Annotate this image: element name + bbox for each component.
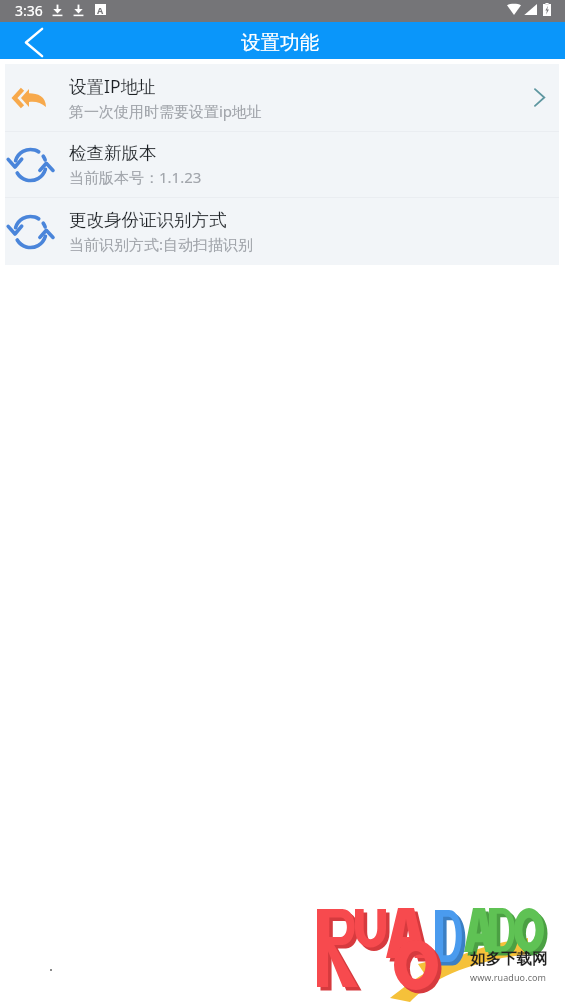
staticText: 当前识别方式:自动扫描识别	[69, 234, 254, 254]
staticText: 设置IP地址	[69, 74, 156, 98]
staticText: 第一次使用时需要设置ip地址	[69, 101, 263, 121]
staticText: 检查新版本	[69, 142, 157, 164]
staticText: A	[97, 4, 104, 15]
button[interactable]: 更改身份证识别方式	[5, 198, 559, 265]
staticText: 设置功能	[241, 30, 319, 55]
button[interactable]: 检查新版本	[5, 132, 559, 197]
staticText: 3:36	[15, 1, 43, 20]
staticText: 更改身份证识别方式	[69, 209, 227, 231]
button[interactable]: 设置IP地址	[5, 64, 559, 131]
staticText: 如多下载网	[470, 949, 548, 969]
button[interactable]: Back	[0, 22, 62, 59]
staticText: 当前版本号：1.1.23	[69, 167, 202, 187]
staticText: www.ruaduo.com	[470, 971, 547, 983]
